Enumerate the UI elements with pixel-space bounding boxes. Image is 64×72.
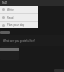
staticText: What are you grateful for? [3, 39, 35, 43]
staticText: Read [7, 16, 14, 20]
button[interactable]: What are you grateful for? [0, 35, 64, 46]
staticText: Write [7, 8, 14, 12]
button[interactable]: Read [0, 14, 38, 21]
button[interactable] [0, 46, 19, 60]
button[interactable]: Category [0, 31, 10, 34]
staticText: Plan your day [7, 23, 25, 27]
button[interactable]: Plan your day [0, 22, 38, 28]
staticText: 9:41 [2, 1, 8, 5]
button[interactable]: Write [0, 6, 38, 13]
